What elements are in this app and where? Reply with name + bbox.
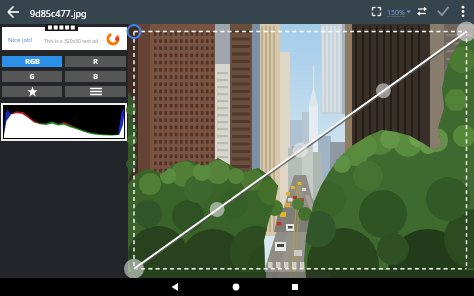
button[interactable] bbox=[4, 0, 24, 24]
staticText: Nice job! bbox=[8, 36, 33, 44]
button[interactable]: 150% bbox=[386, 0, 412, 24]
button[interactable] bbox=[65, 86, 126, 97]
button[interactable]: G bbox=[2, 71, 62, 82]
button[interactable] bbox=[2, 86, 62, 97]
button[interactable]: R bbox=[65, 56, 126, 67]
button[interactable] bbox=[285, 278, 305, 296]
button[interactable] bbox=[414, 0, 430, 24]
button[interactable] bbox=[368, 0, 385, 24]
button[interactable]: Nice job! bbox=[2, 27, 127, 50]
button[interactable] bbox=[226, 278, 246, 296]
staticText: 9d85c477.jpg bbox=[30, 7, 87, 19]
staticText: 150% bbox=[387, 8, 405, 18]
staticText: B bbox=[93, 72, 98, 82]
staticText: R bbox=[93, 57, 98, 67]
button[interactable]: RGB bbox=[2, 56, 62, 67]
button[interactable]: B bbox=[65, 71, 126, 82]
button[interactable] bbox=[435, 0, 451, 24]
staticText: RGB bbox=[25, 57, 40, 67]
staticText: G bbox=[29, 72, 35, 82]
button[interactable] bbox=[128, 24, 474, 278]
button[interactable] bbox=[456, 0, 470, 24]
button[interactable] bbox=[165, 278, 185, 296]
staticText: This is a 320x50 test ad. bbox=[44, 38, 100, 45]
